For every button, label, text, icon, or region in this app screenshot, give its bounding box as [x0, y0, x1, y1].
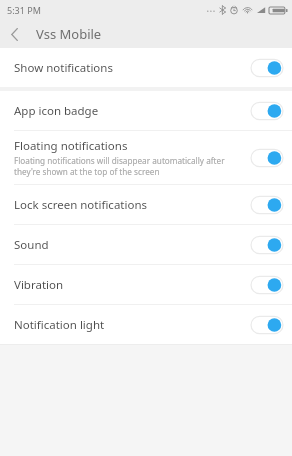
staticText: Floating notifications will disappear au…: [14, 155, 225, 177]
button[interactable]: Toggle: [250, 147, 284, 169]
staticText: Floating notifications: [14, 138, 128, 154]
button[interactable]: Toggle: [250, 57, 284, 79]
staticText: Lock screen notifications: [14, 197, 250, 213]
staticText: Sound: [14, 237, 250, 253]
staticText: Show notifications: [14, 60, 250, 76]
button[interactable]: Show notifications: [0, 48, 292, 87]
button[interactable]: App icon badge: [0, 91, 292, 130]
staticText: Vss Mobile: [36, 25, 102, 43]
button[interactable]: Toggle: [250, 100, 284, 122]
staticText: Vibration: [14, 277, 250, 293]
button[interactable]: Toggle: [250, 234, 284, 256]
staticText: App icon badge: [14, 103, 250, 119]
button[interactable]: Sound: [0, 225, 292, 264]
button[interactable]: Notification light: [0, 305, 292, 344]
staticText: Notification light: [14, 317, 250, 333]
button[interactable]: Back: [0, 20, 28, 48]
button[interactable]: Toggle: [250, 314, 284, 336]
staticText: 5:31 PM: [7, 4, 41, 16]
button[interactable]: Toggle: [250, 274, 284, 296]
button[interactable]: Floating notifications: [0, 131, 292, 184]
button[interactable]: Lock screen notifications: [0, 185, 292, 224]
button[interactable]: Toggle: [250, 194, 284, 216]
button[interactable]: Vibration: [0, 265, 292, 304]
